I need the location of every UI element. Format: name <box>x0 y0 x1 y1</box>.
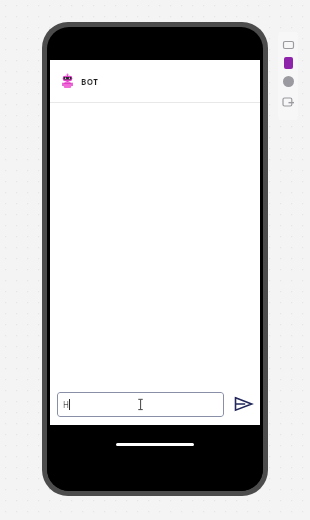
button[interactable]: Send <box>232 393 254 415</box>
button[interactable]: H <box>57 392 224 417</box>
button[interactable]: Theme <box>284 57 293 69</box>
button[interactable]: BOT <box>50 60 260 102</box>
staticText: H <box>63 399 69 410</box>
button[interactable]: Settings <box>283 76 294 87</box>
staticText: BOT <box>81 76 99 87</box>
button[interactable]: Display <box>281 38 295 52</box>
button[interactable]: Layout <box>281 95 295 109</box>
